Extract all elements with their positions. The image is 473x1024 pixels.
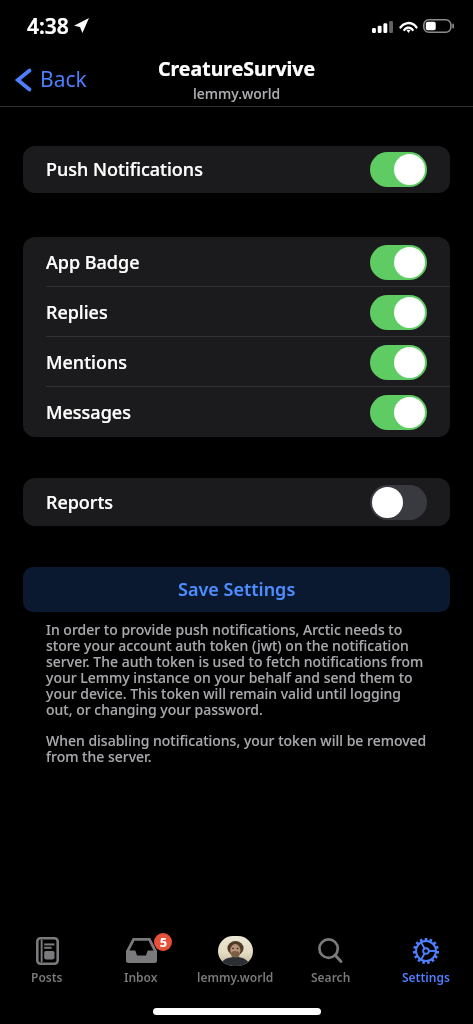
staticText: 4:38 bbox=[27, 12, 69, 41]
staticText: Settings bbox=[402, 969, 450, 985]
button[interactable]: Settings bbox=[378, 916, 473, 1000]
staticText: Save Settings bbox=[178, 577, 296, 602]
staticText: CreatureSurvive bbox=[158, 55, 316, 82]
staticText: In order to provide push notifications, … bbox=[46, 620, 427, 719]
button[interactable] bbox=[370, 295, 427, 330]
staticText: Inbox bbox=[124, 969, 158, 985]
staticText: Replies bbox=[46, 300, 108, 325]
button[interactable]: Mentions bbox=[23, 337, 450, 387]
button[interactable] bbox=[370, 395, 427, 430]
button[interactable]: lemmy.world bbox=[188, 916, 283, 1000]
button[interactable]: Save Settings bbox=[23, 567, 450, 612]
button[interactable]: Push Notifications bbox=[23, 146, 450, 193]
button[interactable]: 5 bbox=[94, 916, 188, 1000]
button[interactable]: Reports bbox=[23, 478, 450, 526]
button[interactable]: Search bbox=[283, 916, 378, 1000]
staticText: lemmy.world bbox=[193, 84, 281, 103]
staticText: lemmy.world bbox=[197, 969, 274, 985]
staticText: 5 bbox=[160, 934, 167, 950]
staticText: Search bbox=[311, 969, 351, 985]
button[interactable] bbox=[370, 152, 427, 187]
button[interactable] bbox=[370, 485, 427, 520]
button[interactable]: Messages bbox=[23, 387, 450, 437]
staticText: Reports bbox=[46, 490, 114, 515]
staticText: Posts bbox=[31, 969, 63, 985]
staticText: App Badge bbox=[46, 250, 140, 275]
staticText: Back bbox=[40, 65, 87, 94]
staticText: Push Notifications bbox=[46, 157, 203, 182]
button[interactable] bbox=[370, 245, 427, 280]
button[interactable]: Replies bbox=[23, 287, 450, 337]
staticText: Mentions bbox=[46, 350, 127, 375]
staticText: When disabling notifications, your token… bbox=[46, 731, 427, 766]
button[interactable]: Back bbox=[0, 59, 99, 100]
button[interactable]: Posts bbox=[0, 916, 94, 1000]
staticText: Messages bbox=[46, 400, 131, 425]
button[interactable] bbox=[370, 345, 427, 380]
button[interactable]: App Badge bbox=[23, 237, 450, 287]
